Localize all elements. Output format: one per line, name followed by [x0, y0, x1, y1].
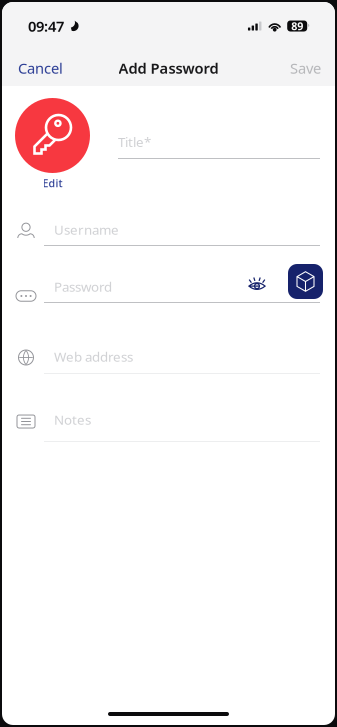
staticText: 89	[291, 19, 303, 33]
button[interactable]: Edit	[15, 98, 90, 190]
button[interactable]: Show password	[244, 265, 272, 298]
staticText: Save	[290, 58, 321, 78]
staticText: Password	[54, 278, 112, 295]
staticText: Title*	[118, 133, 151, 151]
staticText: Cancel	[18, 58, 63, 78]
button[interactable]: Cancel	[2, 52, 77, 84]
staticText: Edit	[42, 176, 62, 190]
staticText: Username	[54, 221, 119, 238]
button[interactable]: Save	[276, 52, 335, 84]
staticText: 09:47	[28, 16, 64, 36]
staticText: Notes	[54, 411, 91, 428]
button[interactable]: Generate password	[288, 264, 323, 299]
staticText: Add Password	[118, 58, 218, 78]
staticText: Web address	[54, 348, 133, 365]
